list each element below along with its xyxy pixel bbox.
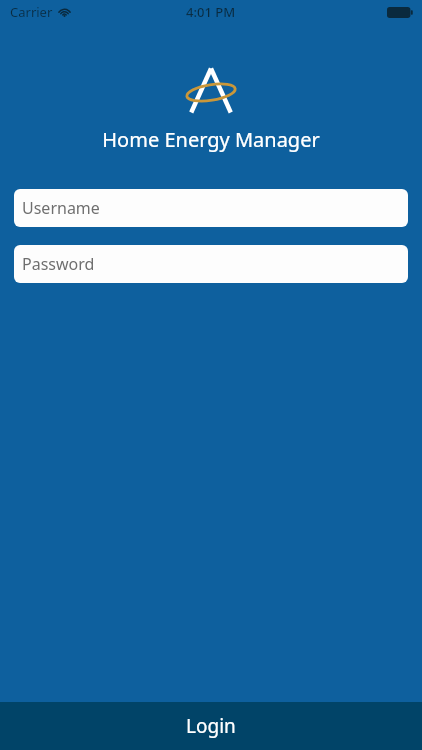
button[interactable]: Password — [14, 245, 408, 283]
staticText: Login — [186, 713, 236, 739]
staticText: 4:01 PM — [186, 3, 236, 21]
staticText: Password — [22, 253, 95, 275]
staticText: Username — [22, 197, 100, 219]
button[interactable]: Login — [0, 702, 422, 750]
staticText: Home Energy Manager — [102, 126, 320, 153]
staticText: Carrier — [10, 3, 53, 21]
button[interactable]: Username — [14, 189, 408, 227]
